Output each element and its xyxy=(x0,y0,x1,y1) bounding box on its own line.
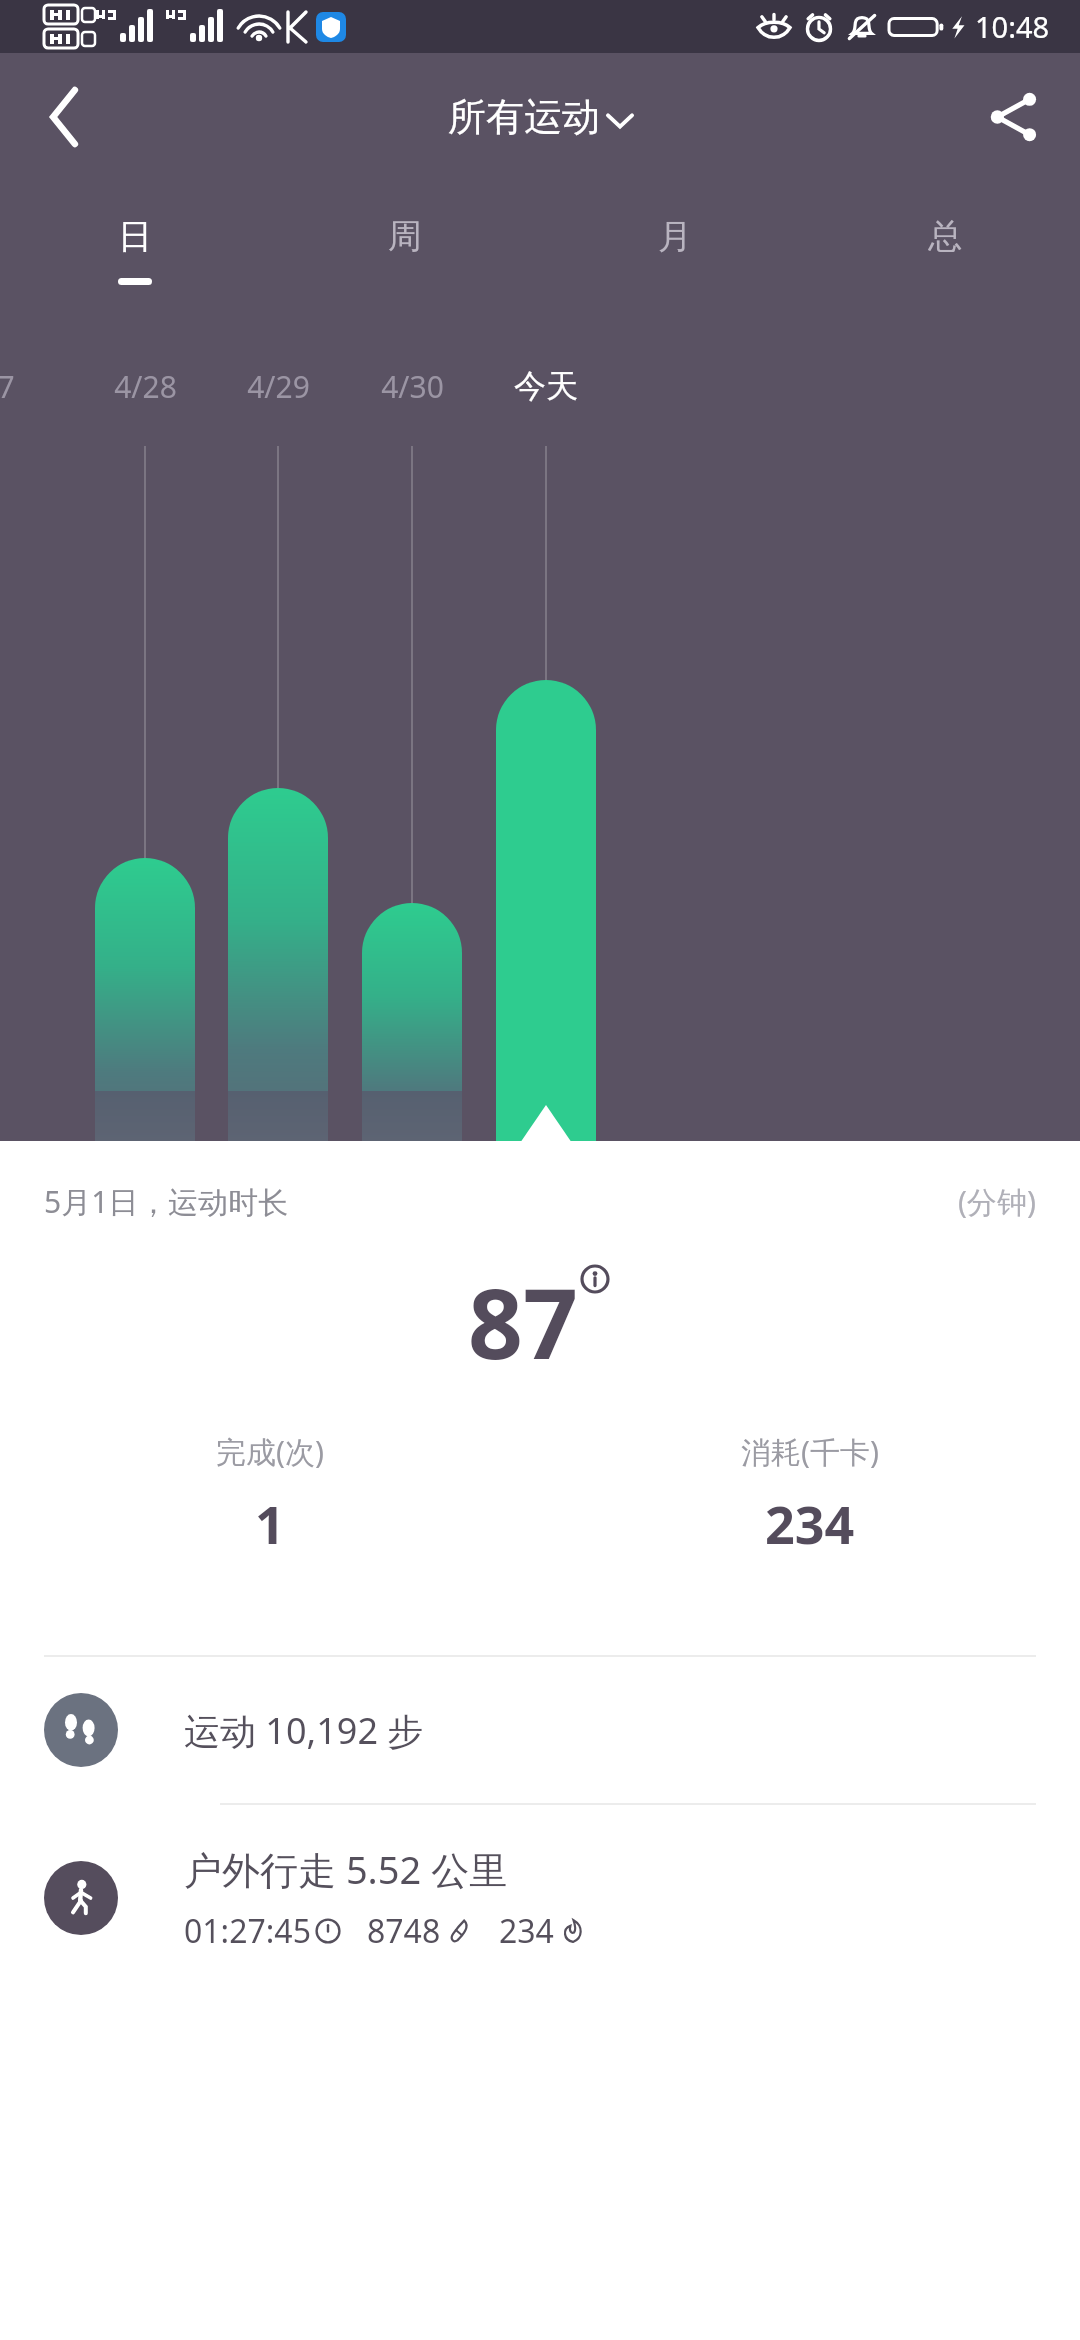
staticText: 日 xyxy=(118,215,152,258)
button[interactable]: 周 xyxy=(270,181,540,318)
staticText: 234 xyxy=(499,1909,554,1953)
staticText: 4/30 xyxy=(381,366,444,407)
button[interactable]: 所有运动 xyxy=(448,93,632,141)
button[interactable]: 返回 xyxy=(22,75,106,159)
staticText: 1 xyxy=(255,1488,285,1559)
button[interactable]: 户外行走 5.52 公里 xyxy=(0,1805,1080,1991)
button[interactable]: 总 xyxy=(810,181,1080,318)
staticText: 户外行走 5.52 公里 xyxy=(184,1843,508,1895)
button[interactable]: 日 xyxy=(0,181,270,318)
button[interactable]: 分享 xyxy=(970,73,1058,161)
staticText: 234 xyxy=(765,1488,855,1559)
staticText: 所有运动 xyxy=(448,93,600,141)
staticText: 4/28 xyxy=(114,366,177,407)
staticText: 87 xyxy=(468,1256,578,1387)
button[interactable]: 消耗(千卡) xyxy=(540,1431,1080,1559)
staticText: 今天 xyxy=(514,366,578,406)
staticText: 8748 xyxy=(367,1909,441,1953)
staticText: 完成(次) xyxy=(216,1431,324,1472)
staticText: 月 xyxy=(658,215,692,258)
button[interactable]: 说明 xyxy=(578,1262,612,1296)
button[interactable]: 运动 10,192 步 xyxy=(0,1657,1080,1803)
staticText: (分钟) xyxy=(958,1181,1036,1222)
staticText: 10:48 xyxy=(975,7,1050,46)
staticText: 01:27:45 xyxy=(184,1909,311,1953)
button[interactable]: 完成(次) xyxy=(0,1431,540,1559)
button[interactable]: 月 xyxy=(540,181,810,318)
staticText: 4/29 xyxy=(247,366,310,407)
staticText: 周 xyxy=(388,215,422,258)
staticText: 5月1日，运动时长 xyxy=(44,1181,289,1222)
staticText: 消耗(千卡) xyxy=(741,1431,879,1472)
staticText: /27 xyxy=(0,366,15,407)
staticText: 运动 10,192 步 xyxy=(184,1706,424,1755)
staticText: 总 xyxy=(928,215,962,258)
